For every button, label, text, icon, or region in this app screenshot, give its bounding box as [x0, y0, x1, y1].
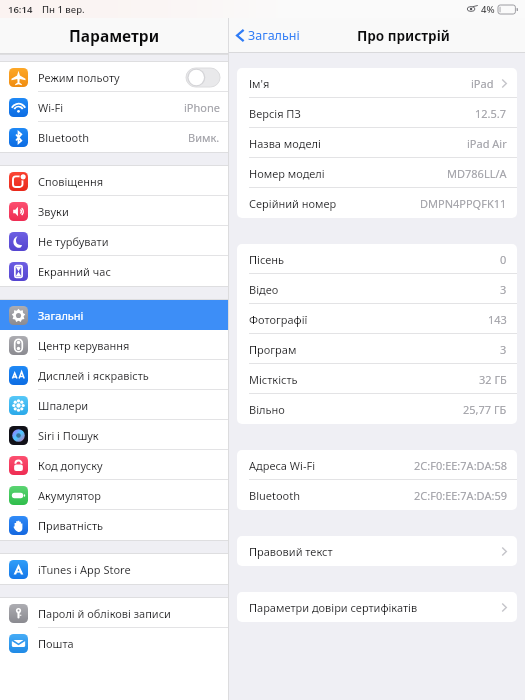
button[interactable]: Адреса Wi-Fi [237, 450, 517, 480]
staticText: Приватність [38, 518, 104, 533]
staticText: 3 [500, 282, 507, 297]
staticText: Параметри довіри сертифікатів [249, 600, 418, 615]
staticText: 25,77 ГБ [463, 402, 507, 417]
other: Airplane mode off [186, 68, 220, 87]
staticText: Загальні [248, 27, 300, 44]
staticText: Код допуску [38, 458, 103, 473]
staticText: 12.5.7 [475, 106, 507, 121]
staticText: iPad [471, 76, 494, 91]
button[interactable]: Місткість [237, 364, 517, 394]
button[interactable]: Дисплей і яскравість [0, 360, 228, 390]
staticText: Пісень [249, 252, 285, 267]
staticText: Bluetooth [249, 488, 301, 503]
staticText: 2C:F0:EE:7A:DA:59 [414, 488, 507, 503]
staticText: Відео [249, 282, 279, 297]
staticText: Bluetooth [38, 130, 90, 145]
button[interactable]: Wi-Fi [0, 92, 228, 122]
button[interactable]: Шпалери [0, 390, 228, 420]
button[interactable]: Загальні [0, 300, 228, 330]
staticText: Ім'я [249, 76, 270, 91]
button[interactable]: Паролі й облікові записи [0, 598, 228, 628]
staticText: Не турбувати [38, 234, 109, 249]
button[interactable]: Bluetooth [237, 480, 517, 510]
staticText: 2C:F0:EE:7A:DA:58 [414, 458, 507, 473]
button[interactable]: Пошта [0, 628, 228, 658]
staticText: Місткість [249, 372, 298, 387]
staticText: Вільно [249, 402, 285, 417]
staticText: Центр керування [38, 338, 130, 353]
staticText: Версія ПЗ [249, 106, 301, 121]
staticText: DMPN4PPQFK11 [420, 196, 507, 211]
button[interactable]: Код допуску [0, 450, 228, 480]
staticText: iPad Air [467, 136, 507, 151]
staticText: Екранний час [38, 264, 111, 279]
staticText: Пошта [38, 636, 74, 651]
staticText: 16:14 [8, 3, 33, 16]
button[interactable]: Siri і Пошук [0, 420, 228, 450]
button[interactable]: Сповіщення [0, 166, 228, 196]
button[interactable]: Програм [237, 334, 517, 364]
staticText: Правовий текст [249, 544, 333, 559]
button[interactable]: Екранний час [0, 256, 228, 286]
staticText: Дисплей і яскравість [38, 368, 149, 383]
staticText: Фотографії [249, 312, 308, 327]
staticText: Сповіщення [38, 174, 104, 189]
button[interactable]: Фотографії [237, 304, 517, 334]
staticText: iTunes і App Store [38, 562, 131, 577]
staticText: Загальні [38, 308, 84, 323]
button[interactable]: Версія ПЗ [237, 98, 517, 128]
button[interactable]: Правовий текст [237, 536, 517, 566]
staticText: Шпалери [38, 398, 89, 413]
staticText: Звуки [38, 204, 69, 219]
button[interactable]: Акумулятор [0, 480, 228, 510]
staticText: Параметри [69, 25, 160, 46]
button[interactable]: Параметри довіри сертифікатів [237, 592, 517, 622]
button[interactable]: Центр керування [0, 330, 228, 360]
staticText: 32 ГБ [479, 372, 507, 387]
button[interactable]: Приватність [0, 510, 228, 540]
button[interactable]: Режим польоту [0, 62, 228, 92]
staticText: Адреса Wi-Fi [249, 458, 315, 473]
staticText: 0 [500, 252, 507, 267]
button[interactable]: iTunes і App Store [0, 554, 228, 584]
staticText: Siri і Пошук [38, 428, 99, 443]
button[interactable]: Ім'я [237, 68, 517, 98]
staticText: Акумулятор [38, 488, 101, 503]
button[interactable]: Загальні [233, 22, 303, 49]
staticText: Серійний номер [249, 196, 337, 211]
button[interactable]: Назва моделі [237, 128, 517, 158]
button[interactable]: Bluetooth [0, 122, 228, 152]
button[interactable]: Вільно [237, 394, 517, 424]
staticText: 3 [500, 342, 507, 357]
staticText: Назва моделі [249, 136, 321, 151]
staticText: Wi-Fi [38, 100, 64, 115]
staticText: Вимк. [188, 130, 220, 145]
staticText: 4% [481, 3, 495, 16]
staticText: MD786LL/A [447, 166, 507, 181]
staticText: Номер моделі [249, 166, 325, 181]
staticText: Паролі й облікові записи [38, 606, 171, 621]
staticText: iPhone [184, 100, 220, 115]
button[interactable]: Не турбувати [0, 226, 228, 256]
button[interactable]: Звуки [0, 196, 228, 226]
button[interactable]: Номер моделі [237, 158, 517, 188]
staticText: Програм [249, 342, 297, 357]
staticText: Пн 1 вер. [42, 3, 85, 16]
button[interactable]: Пісень [237, 244, 517, 274]
button[interactable]: Відео [237, 274, 517, 304]
staticText: 143 [488, 312, 507, 327]
staticText: Про пристрій [357, 27, 450, 45]
staticText: Режим польоту [38, 70, 120, 85]
button[interactable]: Серійний номер [237, 188, 517, 218]
